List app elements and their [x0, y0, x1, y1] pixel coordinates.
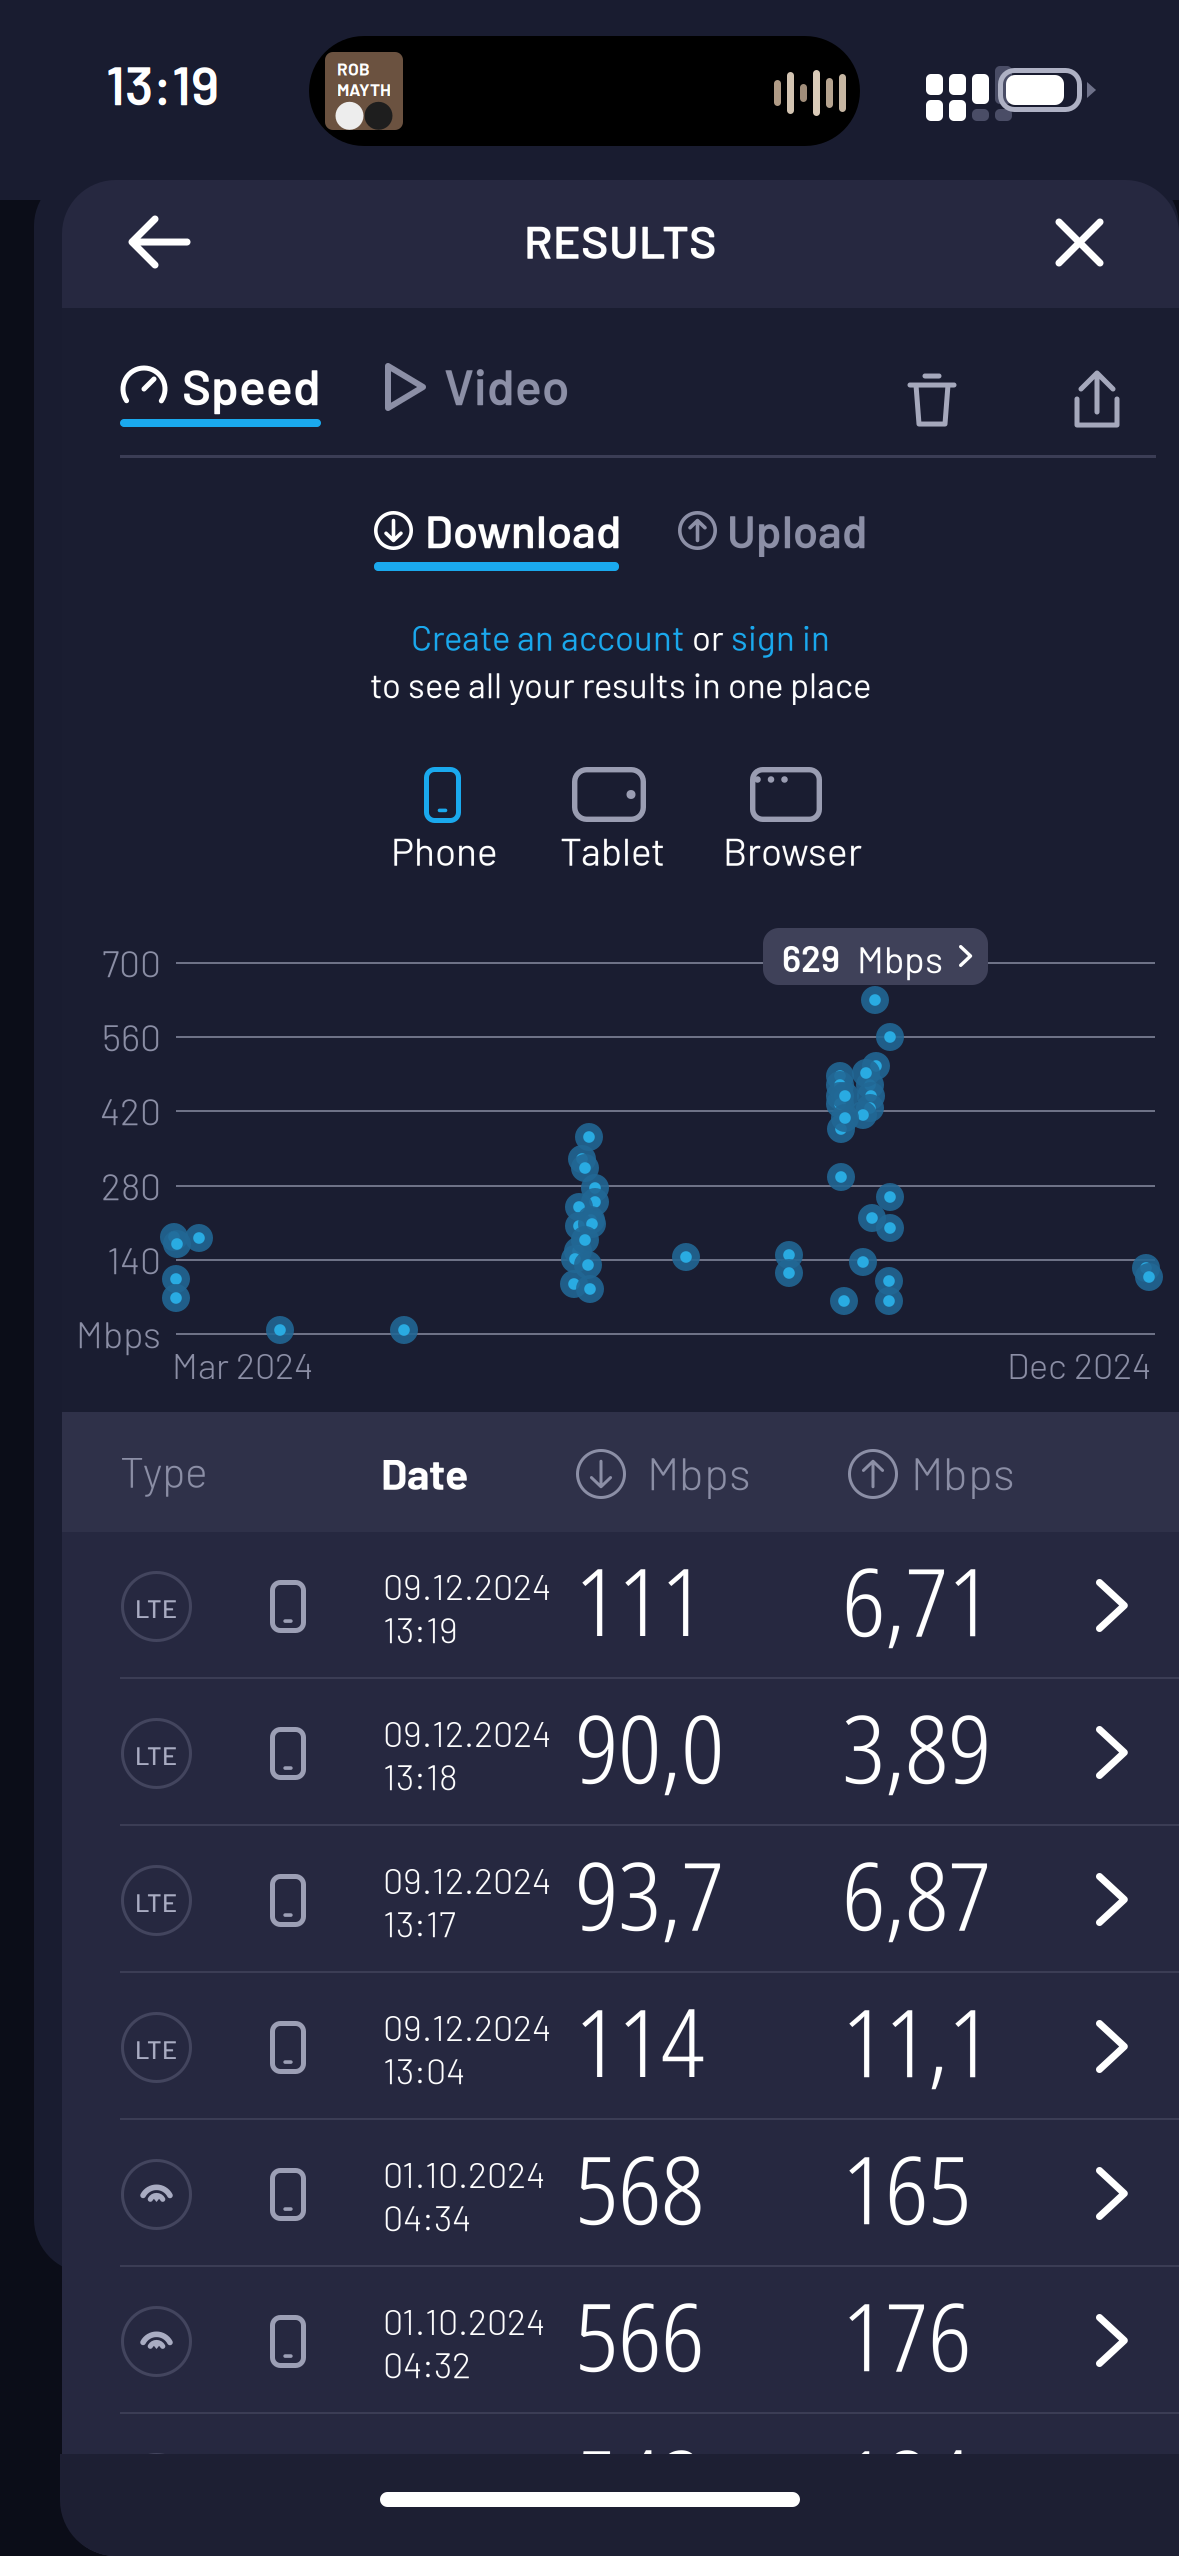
staticText: 01.10.2024	[383, 2446, 545, 2489]
staticText: 11,1	[842, 1976, 991, 2105]
staticText: Download	[425, 503, 621, 557]
button[interactable]: LTE	[62, 1532, 1179, 1679]
staticText: 09.12.2024	[383, 1858, 551, 1901]
staticText: 568	[575, 2123, 704, 2252]
staticText: Dec 2024	[1007, 1343, 1151, 1386]
staticText: 09.12.2024	[383, 1564, 551, 1607]
button[interactable]: Phone	[377, 767, 577, 887]
button[interactable]: 01.10.2024	[62, 2414, 1179, 2556]
staticText: 566	[575, 2270, 704, 2399]
staticText: LTE	[135, 1887, 177, 1917]
staticText: Mar 2024	[172, 1343, 313, 1386]
button[interactable]: Video	[382, 356, 632, 426]
staticText: Speed	[182, 356, 321, 415]
staticText: Date	[381, 1447, 468, 1498]
staticText: Type	[120, 1445, 208, 1496]
staticText: 01.10.2024	[383, 2299, 545, 2342]
staticText: 6,87	[842, 1829, 991, 1958]
staticText: 700	[102, 940, 161, 985]
button[interactable]: Delete	[892, 356, 972, 444]
button[interactable]: 01.10.2024	[62, 2267, 1179, 2414]
staticText: 542	[575, 2417, 704, 2546]
staticText: 140	[107, 1237, 161, 1282]
staticText: Upload	[727, 503, 867, 557]
button[interactable]: Speed	[120, 356, 390, 436]
staticText: to see all your results in one place	[370, 664, 871, 705]
staticText: LTE	[135, 1593, 177, 1623]
staticText: 114	[575, 1976, 704, 2105]
staticText: 01.10.2024	[383, 2152, 545, 2195]
staticText: 184	[842, 2417, 971, 2546]
staticText: Browser	[723, 827, 862, 873]
staticText: 560	[102, 1014, 161, 1059]
button[interactable]: Create an account	[411, 616, 685, 658]
staticText: Mbps	[76, 1311, 161, 1356]
button[interactable]: sign in	[731, 616, 830, 658]
button[interactable]: Browser	[709, 767, 909, 887]
button[interactable]: LTE	[62, 1826, 1179, 1973]
staticText: 93,7	[575, 1829, 724, 1958]
staticText: 09.12.2024	[383, 2005, 551, 2048]
staticText: 420	[100, 1088, 161, 1133]
staticText: 13:04	[383, 2048, 465, 2091]
staticText: or	[685, 616, 731, 658]
button[interactable]: Tablet	[546, 767, 746, 887]
staticText: Create an account	[411, 616, 685, 658]
staticText: Mbps	[857, 936, 943, 981]
staticText: 04:34	[383, 2195, 471, 2238]
button[interactable]: Back	[113, 200, 205, 284]
staticText: 13:17	[383, 1901, 456, 1944]
staticText: 280	[101, 1163, 161, 1208]
button[interactable]: Share	[1058, 354, 1136, 444]
staticText: 13:18	[383, 1754, 458, 1797]
staticText: 111	[575, 1535, 704, 1664]
staticText: LTE	[135, 2034, 177, 2064]
staticText: Video	[444, 356, 569, 415]
staticText: 09.12.2024	[383, 1711, 551, 1754]
button[interactable]: Close	[1041, 204, 1118, 281]
button[interactable]: 01.10.2024	[62, 2120, 1179, 2267]
staticText: 13:19	[383, 1607, 458, 1650]
button[interactable]: Upload	[678, 506, 928, 562]
staticText: ROB MAYTH	[337, 58, 391, 100]
button[interactable]: LTE	[62, 1679, 1179, 1826]
staticText: Phone	[391, 827, 498, 873]
staticText: 176	[842, 2270, 971, 2399]
staticText: Tablet	[560, 827, 665, 873]
button[interactable]: 629	[763, 928, 988, 985]
button[interactable]: Download	[374, 506, 684, 576]
staticText: 6,71	[842, 1535, 991, 1664]
staticText: LTE	[135, 1740, 177, 1770]
staticText: 629	[782, 936, 840, 979]
staticText: 90,0	[575, 1682, 724, 1811]
staticText: 165	[842, 2123, 971, 2252]
staticText: Mbps	[647, 1445, 751, 1499]
staticText: sign in	[731, 616, 830, 658]
staticText: RESULTS	[524, 212, 717, 268]
button[interactable]: LTE	[62, 1973, 1179, 2120]
staticText: Mbps	[911, 1445, 1015, 1499]
staticText: 13:19	[106, 52, 219, 116]
staticText: 3,89	[842, 1682, 991, 1811]
staticText: 04:32	[383, 2342, 471, 2385]
staticText: 04:30	[383, 2489, 472, 2532]
